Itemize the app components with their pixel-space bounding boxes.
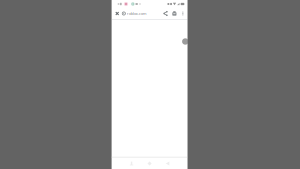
button[interactable]: Share: [161, 8, 170, 18]
button[interactable]: Close: [113, 8, 121, 18]
button[interactable]: Recents: [165, 158, 170, 169]
button[interactable]: Site information: [170, 8, 179, 18]
staticText: roblox.com: [127, 11, 147, 16]
button[interactable]: roblox.com: [122, 8, 147, 18]
button[interactable]: Back: [129, 158, 134, 169]
button[interactable]: Home: [147, 158, 152, 169]
button[interactable]: More options: [179, 8, 187, 18]
